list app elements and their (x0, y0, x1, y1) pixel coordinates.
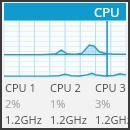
staticText: 2% (5, 96, 21, 111)
button[interactable]: CPU usage graph (4, 21, 126, 77)
staticText: 1% (50, 96, 66, 111)
staticText: 1.2GHz (50, 112, 87, 127)
button[interactable]: CPU 3 (95, 80, 128, 127)
staticText: CPU 1 (5, 80, 36, 95)
button[interactable]: CPU 2 (50, 80, 95, 127)
staticText: 3% (95, 96, 111, 111)
staticText: 1.2GHz (5, 112, 42, 127)
button[interactable]: CPU (4, 3, 126, 21)
staticText: CPU (94, 3, 120, 21)
staticText: CPU 2 (50, 80, 81, 95)
staticText: CPU 3 (95, 80, 126, 95)
staticText: 1.2GHz (95, 112, 128, 127)
button[interactable]: CPU 1 (5, 80, 50, 127)
